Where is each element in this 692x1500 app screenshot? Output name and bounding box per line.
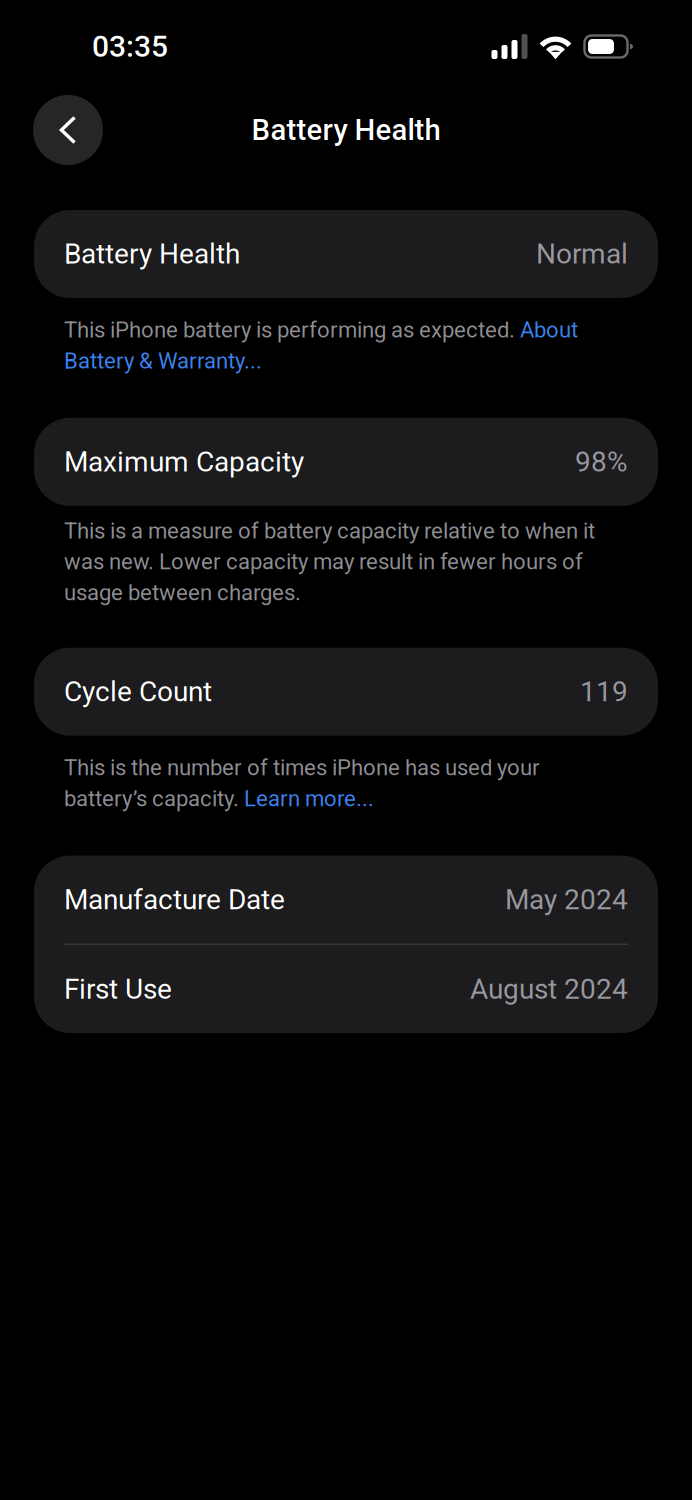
button[interactable]: Battery Health: [34, 210, 658, 298]
staticText: Manufacture Date: [64, 883, 285, 916]
staticText: 03:35: [92, 29, 168, 64]
staticText: This is a measure of battery capacity re…: [64, 518, 595, 606]
staticText: Battery Health: [251, 113, 440, 147]
button[interactable]: Manufacture Date: [34, 856, 658, 944]
staticText: Battery Health: [64, 238, 240, 270]
staticText: August 2024: [470, 973, 628, 1005]
staticText: 98%: [575, 445, 628, 478]
staticText: Cycle Count: [64, 675, 212, 708]
button[interactable]: First Use: [34, 945, 658, 1033]
staticText: May 2024: [505, 883, 628, 916]
staticText: This is the number of times iPhone has u…: [64, 755, 540, 812]
staticText: First Use: [64, 973, 172, 1005]
staticText: This iPhone battery is performing as exp…: [64, 317, 578, 374]
button[interactable]: Cycle Count: [34, 648, 658, 736]
staticText: Maximum Capacity: [64, 445, 304, 478]
staticText: Normal: [536, 238, 628, 270]
button[interactable]: Back: [33, 95, 103, 165]
staticText: 119: [580, 675, 628, 708]
button[interactable]: Maximum Capacity: [34, 418, 658, 506]
